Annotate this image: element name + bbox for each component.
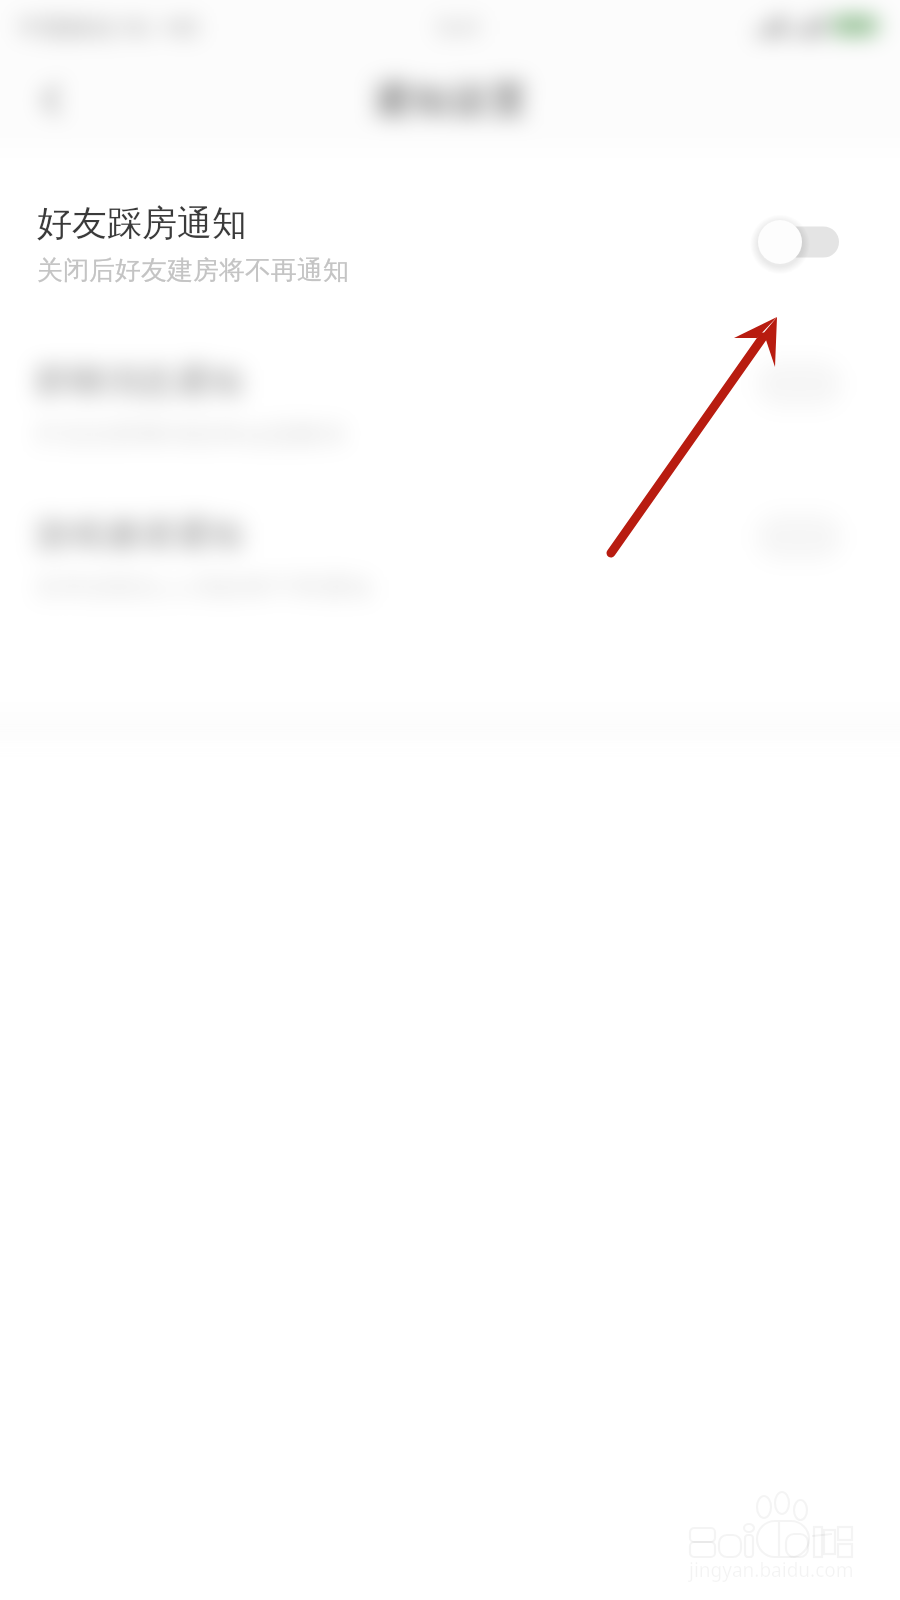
staticText: 中国移动 5G HD bbox=[18, 10, 200, 43]
button[interactable]: 好友踩房通知 bbox=[0, 167, 900, 320]
staticText: 群聊消息通知 bbox=[34, 359, 244, 403]
button[interactable]: 好友踩房通知 switch, off bbox=[758, 212, 842, 276]
staticText: 好友踩房通知 bbox=[37, 201, 247, 245]
staticText: jingyan.baidu.com bbox=[689, 1557, 854, 1583]
staticText: 通知设置 bbox=[372, 76, 528, 124]
other: Back bbox=[20, 69, 82, 131]
staticText: 游戏邀请通知 bbox=[34, 512, 244, 556]
staticText: 关闭后好友建房将不再通知 bbox=[37, 254, 349, 287]
